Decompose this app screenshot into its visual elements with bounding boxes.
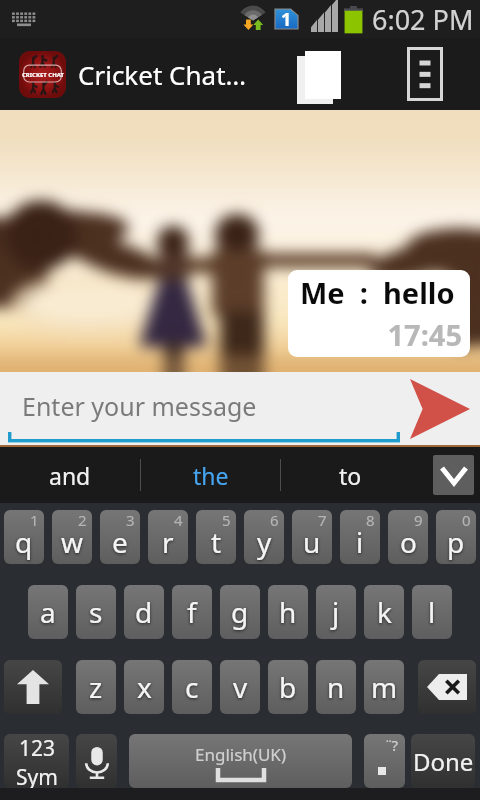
button[interactable]: 7 bbox=[292, 510, 332, 564]
button[interactable]: b bbox=[268, 660, 308, 714]
button[interactable]: l bbox=[412, 585, 452, 639]
button[interactable]: j bbox=[316, 585, 356, 639]
button[interactable]: 8 bbox=[340, 510, 380, 564]
staticText: p bbox=[447, 523, 465, 561]
staticText: 3 bbox=[126, 510, 135, 530]
staticText: h bbox=[279, 593, 297, 631]
staticText: g bbox=[231, 593, 249, 631]
staticText: t bbox=[211, 523, 222, 561]
button[interactable]: Copy bbox=[288, 38, 350, 110]
staticText: CRICKET CHAT bbox=[22, 71, 64, 79]
staticText: English(UK) bbox=[195, 743, 286, 766]
button[interactable]: 5 bbox=[196, 510, 236, 564]
staticText: v bbox=[233, 668, 248, 706]
button[interactable]: a bbox=[28, 585, 68, 639]
button[interactable]: Space bbox=[129, 734, 352, 788]
staticText: Sym bbox=[16, 763, 58, 788]
button[interactable]: Cricket Chat app icon bbox=[19, 51, 66, 98]
staticText: 2 bbox=[78, 510, 87, 530]
button[interactable]: g bbox=[220, 585, 260, 639]
staticText: z bbox=[89, 668, 103, 706]
button[interactable]: m bbox=[364, 660, 404, 714]
staticText: 6:02 PM bbox=[372, 1, 474, 38]
button[interactable]: Shift bbox=[4, 660, 62, 714]
staticText: a bbox=[40, 593, 56, 631]
button[interactable]: 2 bbox=[52, 510, 92, 564]
staticText: i bbox=[356, 523, 364, 561]
button[interactable]: Enter your message bbox=[8, 372, 400, 447]
staticText: to bbox=[339, 460, 362, 491]
staticText: 17:45 bbox=[300, 315, 462, 354]
button[interactable]: z bbox=[76, 660, 116, 714]
button[interactable]: h bbox=[268, 585, 308, 639]
button[interactable]: Send bbox=[404, 374, 476, 444]
button[interactable]: 6 bbox=[244, 510, 284, 564]
staticText: s bbox=[89, 593, 103, 631]
staticText: r bbox=[162, 523, 174, 561]
staticText: 1 bbox=[30, 510, 39, 530]
staticText: 7 bbox=[318, 510, 327, 530]
button[interactable]: Hide suggestions bbox=[420, 447, 480, 503]
button[interactable]: x bbox=[124, 660, 164, 714]
staticText: 0 bbox=[462, 510, 471, 530]
staticText: q bbox=[15, 523, 33, 561]
staticText: f bbox=[187, 593, 197, 631]
button[interactable]: d bbox=[124, 585, 164, 639]
button[interactable]: Period bbox=[364, 734, 405, 788]
button[interactable]: 0 bbox=[436, 510, 476, 564]
button[interactable]: 1 bbox=[4, 510, 44, 564]
staticText: b bbox=[279, 668, 297, 706]
button[interactable]: to bbox=[281, 447, 420, 503]
button[interactable]: Voice input bbox=[76, 734, 117, 788]
staticText: 6 bbox=[270, 510, 279, 530]
staticText: o bbox=[400, 523, 417, 561]
button[interactable]: f bbox=[172, 585, 212, 639]
button[interactable]: Done bbox=[411, 734, 475, 788]
button[interactable]: c bbox=[172, 660, 212, 714]
button[interactable]: v bbox=[220, 660, 260, 714]
staticText: Cricket Chat… bbox=[78, 57, 247, 92]
staticText: 123 bbox=[19, 734, 56, 763]
button[interactable]: 4 bbox=[148, 510, 188, 564]
staticText: k bbox=[377, 593, 392, 631]
button[interactable]: Backspace bbox=[418, 660, 476, 714]
staticText: j bbox=[332, 593, 340, 631]
button[interactable]: s bbox=[76, 585, 116, 639]
staticText: y bbox=[257, 523, 272, 561]
staticText: w bbox=[61, 523, 84, 561]
button[interactable]: k bbox=[364, 585, 404, 639]
staticText: l bbox=[428, 593, 436, 631]
staticText: x bbox=[137, 668, 152, 706]
staticText: d bbox=[135, 593, 153, 631]
staticText: Me : hello bbox=[300, 273, 455, 312]
button[interactable]: n bbox=[316, 660, 356, 714]
staticText: and bbox=[49, 460, 91, 491]
staticText: n bbox=[327, 668, 345, 706]
button[interactable]: More options bbox=[398, 38, 452, 110]
staticText: 8 bbox=[366, 510, 375, 530]
staticText: 1 bbox=[281, 7, 292, 32]
button[interactable]: 123 bbox=[4, 734, 69, 788]
staticText: 9 bbox=[414, 510, 423, 530]
button[interactable]: and bbox=[0, 447, 140, 503]
staticText: Enter your message bbox=[22, 389, 257, 423]
staticText: ˙˙? bbox=[386, 735, 399, 755]
staticText: m bbox=[371, 668, 398, 706]
staticText: c bbox=[185, 668, 199, 706]
button[interactable]: Me : hello bbox=[288, 270, 470, 357]
button[interactable]: 9 bbox=[388, 510, 428, 564]
staticText: u bbox=[303, 523, 321, 561]
button[interactable]: the bbox=[141, 447, 280, 503]
staticText: 5 bbox=[222, 510, 231, 530]
staticText: 4 bbox=[174, 510, 183, 530]
staticText: e bbox=[112, 523, 128, 561]
staticText: the bbox=[193, 460, 229, 491]
button[interactable]: 3 bbox=[100, 510, 140, 564]
staticText: Done bbox=[413, 745, 474, 778]
